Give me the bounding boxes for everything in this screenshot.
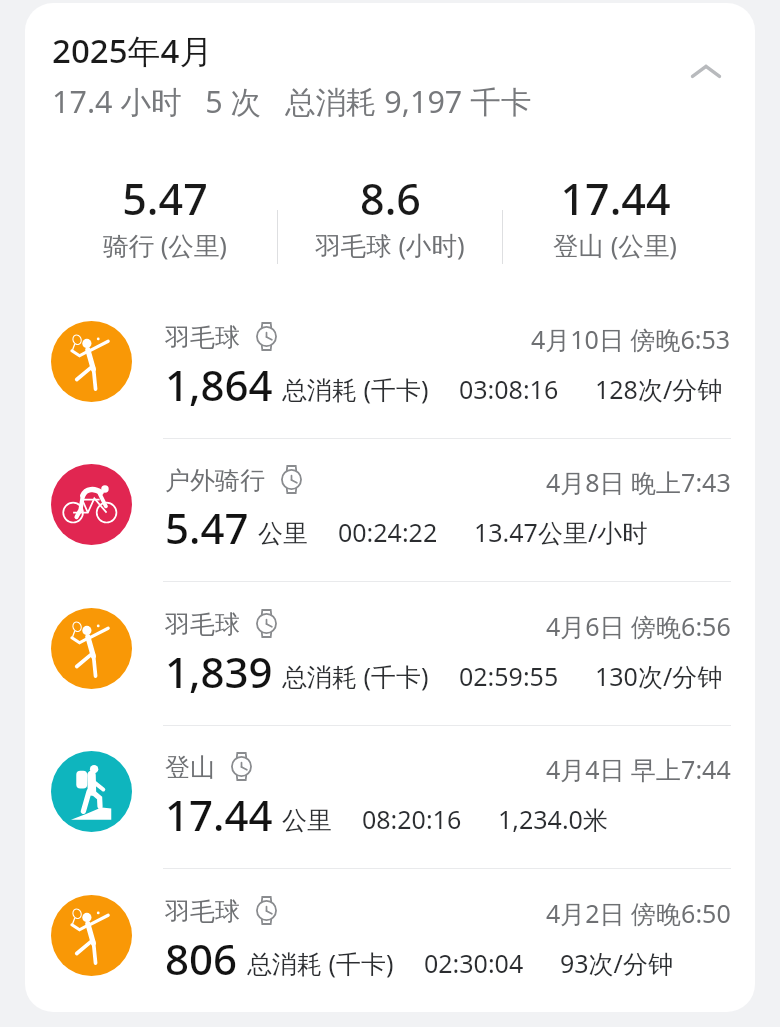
staticText: 户外骑行 bbox=[165, 465, 265, 496]
button[interactable]: 2025年4月 bbox=[25, 3, 755, 143]
button[interactable]: 8.6 bbox=[278, 165, 502, 265]
button[interactable]: 羽毛球 bbox=[25, 579, 755, 722]
staticText: 登山 (公里) bbox=[553, 228, 677, 263]
staticText: 羽毛球 bbox=[165, 609, 240, 640]
staticText: 羽毛球 (小时) bbox=[315, 228, 465, 263]
staticText: 总消耗 (千卡) bbox=[282, 372, 429, 406]
staticText: 4月10日 傍晚6:53 bbox=[531, 322, 731, 356]
staticText: 5.47 bbox=[122, 169, 208, 228]
staticText: 4月6日 傍晚6:56 bbox=[546, 609, 731, 643]
staticText: 8.6 bbox=[360, 169, 421, 228]
staticText: 00:24:22 bbox=[338, 515, 438, 549]
button[interactable]: Collapse bbox=[682, 45, 730, 93]
staticText: 13.47公里/小时 bbox=[474, 515, 648, 549]
staticText: 登山 bbox=[165, 752, 215, 783]
staticText: 公里 bbox=[282, 805, 332, 836]
staticText: 02:59:55 bbox=[459, 659, 559, 693]
staticText: 1,234.0米 bbox=[498, 802, 608, 836]
staticText: 2025年4月 bbox=[52, 28, 213, 73]
staticText: 5.47 bbox=[165, 499, 249, 556]
staticText: 1,864 bbox=[165, 356, 273, 413]
staticText: 总消耗 (千卡) bbox=[247, 946, 394, 980]
staticText: 4月2日 傍晚6:50 bbox=[546, 896, 731, 930]
staticText: 羽毛球 bbox=[165, 896, 240, 927]
staticText: 08:20:16 bbox=[362, 802, 462, 836]
staticText: 130次/分钟 bbox=[595, 659, 723, 693]
staticText: 17.4 小时 5 次 总消耗 9,197 千卡 bbox=[52, 80, 532, 122]
staticText: 总消耗 (千卡) bbox=[282, 659, 429, 693]
staticText: 93次/分钟 bbox=[560, 946, 673, 980]
button[interactable]: 5.47 bbox=[53, 165, 277, 265]
button[interactable]: 17.44 bbox=[503, 165, 727, 265]
staticText: 806 bbox=[165, 930, 238, 987]
staticText: 128次/分钟 bbox=[595, 372, 723, 406]
staticText: 1,839 bbox=[165, 643, 273, 700]
staticText: 骑行 (公里) bbox=[103, 228, 227, 263]
staticText: 羽毛球 bbox=[165, 322, 240, 353]
staticText: 4月4日 早上7:44 bbox=[546, 752, 731, 786]
button[interactable]: 登山 bbox=[25, 722, 755, 865]
staticText: 4月8日 晚上7:43 bbox=[546, 465, 731, 499]
staticText: 02:30:04 bbox=[424, 946, 524, 980]
staticText: 17.44 bbox=[560, 169, 671, 228]
button[interactable]: 户外骑行 bbox=[25, 435, 755, 578]
staticText: 公里 bbox=[258, 518, 308, 549]
staticText: 17.44 bbox=[165, 786, 273, 843]
button[interactable]: 羽毛球 bbox=[25, 866, 755, 1009]
button[interactable]: 羽毛球 bbox=[25, 292, 755, 435]
staticText: 03:08:16 bbox=[459, 372, 559, 406]
